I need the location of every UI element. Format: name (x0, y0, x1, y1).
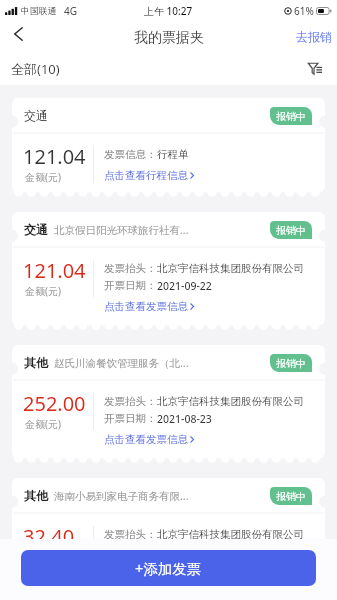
staticText: 2021-08-23 (157, 412, 212, 426)
staticText: 2021-08-23 (157, 545, 212, 559)
staticText: 交通 (24, 108, 48, 123)
staticText: 发票信息： (104, 148, 157, 161)
staticText: 金额(元) (25, 550, 61, 564)
staticText: 中国联通 (21, 6, 57, 17)
staticText: 4G (64, 4, 77, 18)
staticText: 交通 (24, 222, 48, 237)
staticText: 报销中 (276, 490, 306, 503)
staticText: 121.04 (23, 143, 86, 170)
staticText: 报销中 (276, 357, 306, 370)
staticText: 去报销 (296, 29, 332, 44)
staticText: 点击查看行程信息 (104, 169, 188, 182)
button[interactable]: 交通 (12, 98, 325, 197)
staticText: 报销中 (276, 110, 306, 123)
staticText: 行程单 (157, 148, 189, 161)
button[interactable]: 点击查看发票信息 (104, 565, 194, 579)
staticText: 金额(元) (25, 284, 61, 298)
staticText: 发票抬头： (104, 528, 157, 541)
staticText: 赵氏川渝餐饮管理服务（北... (54, 356, 189, 370)
staticText: 北京宇信科技集团股份有限公司 (157, 528, 304, 541)
staticText: 发票抬头： (104, 395, 157, 408)
staticText: 全部(10) (11, 60, 60, 78)
staticText: 其他 (24, 355, 48, 370)
button[interactable]: 点击查看发票信息 (104, 299, 194, 313)
staticText: +添加发票 (135, 558, 202, 578)
button[interactable]: 交通 (12, 212, 325, 330)
staticText: 点击查看发票信息 (104, 566, 188, 579)
staticText: 32.40 (23, 523, 75, 550)
staticText: 北京假日阳光环球旅行社有... (54, 223, 189, 237)
staticText: 开票日期： (104, 412, 157, 425)
staticText: 开票日期： (104, 545, 157, 558)
staticText: 61% (294, 4, 314, 18)
staticText: 我的票据夹 (134, 29, 204, 47)
staticText: 点击查看发票信息 (104, 300, 188, 313)
staticText: 报销中 (276, 224, 306, 237)
staticText: 121.04 (23, 257, 86, 284)
staticText: 2021-09-22 (157, 279, 212, 293)
staticText: 海南小易到家电子商务有限... (54, 489, 189, 503)
button[interactable]: +添加发票 (21, 550, 316, 586)
staticText: 252.00 (23, 390, 86, 417)
staticText: 开票日期： (104, 279, 157, 292)
button[interactable]: 点击查看行程信息 (104, 168, 194, 182)
button[interactable]: 其他 (12, 345, 325, 463)
staticText: 金额(元) (25, 417, 61, 431)
staticText: 北京宇信科技集团股份有限公司 (157, 262, 304, 275)
button[interactable]: Back (0, 20, 36, 48)
staticText: 上午 10:27 (144, 4, 193, 18)
staticText: 发票抬头： (104, 262, 157, 275)
staticText: 金额(元) (25, 170, 61, 184)
button[interactable]: 去报销 (296, 29, 332, 44)
button[interactable]: Filter (304, 57, 326, 79)
staticText: 其他 (24, 488, 48, 503)
button[interactable]: 点击查看发票信息 (104, 432, 194, 446)
button[interactable]: 其他 (12, 478, 325, 596)
staticText: 北京宇信科技集团股份有限公司 (157, 395, 304, 408)
staticText: 点击查看发票信息 (104, 433, 188, 446)
